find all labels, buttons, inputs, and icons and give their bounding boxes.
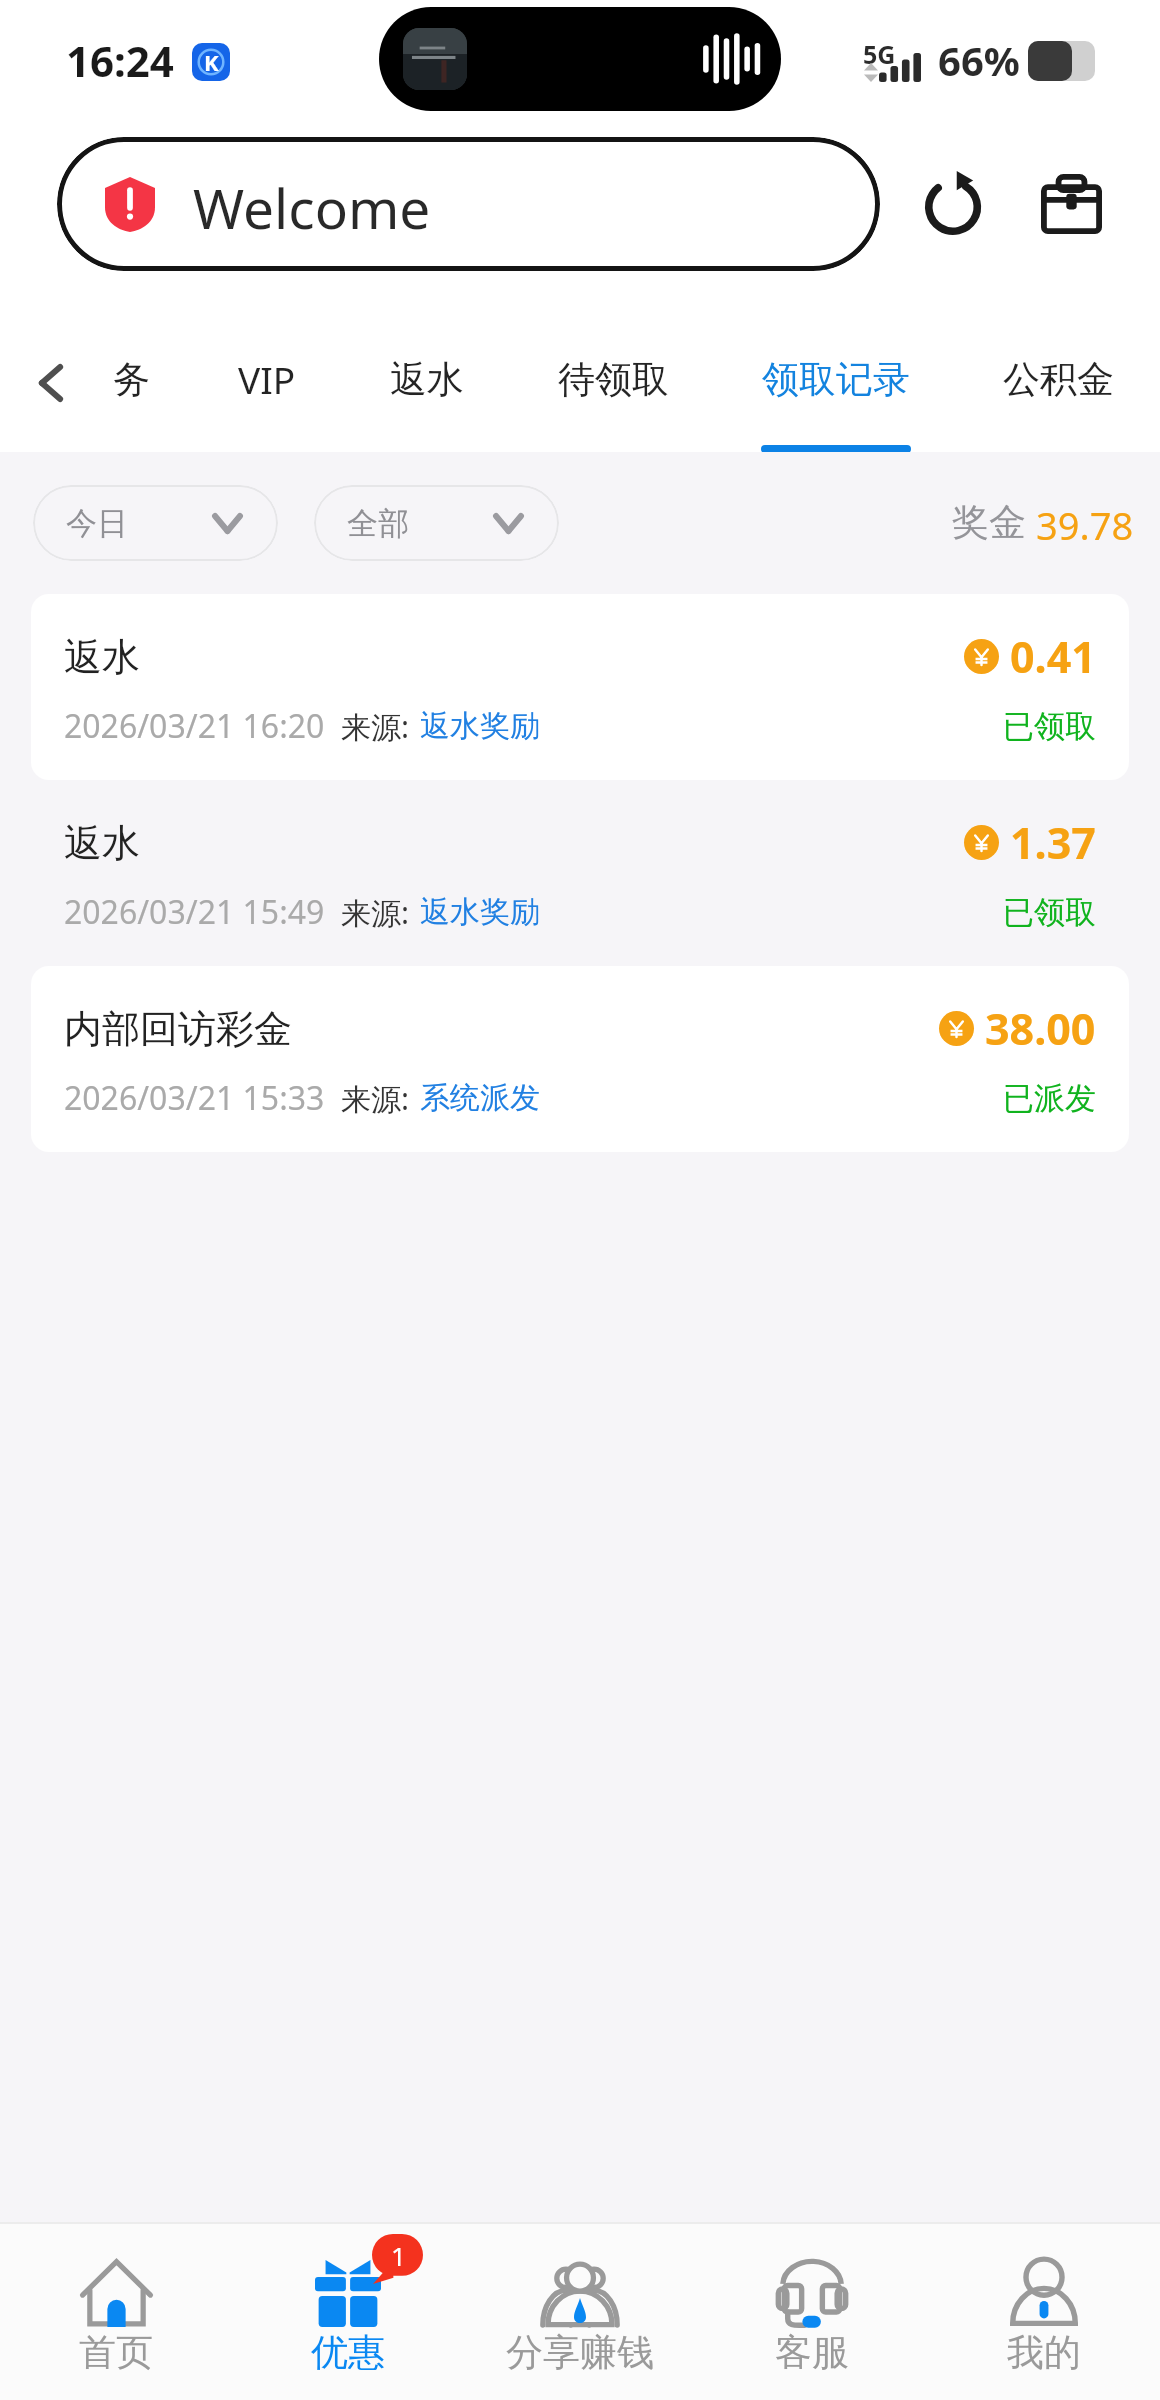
staticText: 待领取 [558,356,669,403]
staticText: 0.41 [1010,627,1096,686]
button[interactable]: 客服 [696,2224,928,2400]
button[interactable]: 内部回访彩金 [31,966,1129,1152]
staticText: 已领取 [1003,707,1096,746]
staticText: 16:24 [66,32,174,89]
button[interactable]: 今日 [33,485,278,561]
staticText: 返水 [64,819,140,867]
button[interactable]: 公积金 [981,336,1136,422]
button[interactable]: 分享赚钱 [464,2224,696,2400]
staticText: 返水 [64,633,140,681]
button[interactable]: 返水 [31,780,1129,966]
staticText: K [204,47,219,77]
button[interactable]: Refresh [903,152,1007,256]
staticText: 39.78 [1036,499,1134,551]
button[interactable]: 领取记录 [740,336,932,422]
staticText: 奖金 [952,499,1026,546]
staticText: 已派发 [1003,1079,1096,1118]
staticText: 公积金 [1003,356,1114,403]
button[interactable]: 待领取 [536,336,691,422]
staticText: 来源: [341,1078,410,1119]
staticText: 已领取 [1003,893,1096,932]
staticText: 系统派发 [420,1079,540,1117]
button[interactable]: 首页 [0,2224,232,2400]
staticText: 客服 [775,2329,849,2376]
staticText: 1.37 [1010,813,1096,872]
button[interactable]: Toolbox [1019,152,1123,256]
button[interactable]: VIP [189,336,344,422]
staticText: 来源: [341,892,410,933]
staticText: 我的 [1007,2329,1081,2376]
button[interactable]: Back [12,340,90,426]
staticText: 今日 [66,504,128,543]
staticText: 首页 [79,2329,153,2376]
staticText: VIP [238,354,296,404]
staticText: 内部回访彩金 [64,1005,292,1053]
staticText: 2026/03/21 15:33 [64,1076,325,1120]
button[interactable]: 返水 [368,336,486,422]
button[interactable]: Welcome [57,137,880,271]
staticText: 来源: [341,706,410,747]
staticText: 全部 [347,504,409,543]
staticText: 领取记录 [762,356,910,403]
staticText: 5G [863,37,896,71]
button[interactable]: 务 [91,336,172,422]
button[interactable]: 我的 [928,2224,1160,2400]
staticText: 2026/03/21 15:49 [64,890,325,934]
staticText: Welcome [193,170,431,245]
staticText: 返水 [390,356,464,403]
staticText: 返水奖励 [420,893,540,931]
button[interactable]: 全部 [314,485,559,561]
button[interactable]: 返水 [31,594,1129,780]
staticText: 66% [938,33,1020,87]
staticText: 1 [391,2238,406,2273]
staticText: 返水奖励 [420,707,540,745]
staticText: 务 [113,356,150,403]
staticText: 优惠 [311,2329,385,2376]
staticText: 38.00 [985,999,1096,1058]
staticText: 分享赚钱 [506,2329,654,2376]
staticText: 2026/03/21 16:20 [64,704,325,748]
button[interactable]: 1 [232,2224,464,2400]
